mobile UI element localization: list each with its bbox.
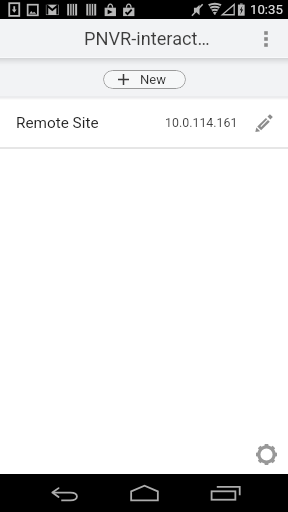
button[interactable]: More options: [244, 19, 288, 57]
staticText: 10.0.114.161: [165, 115, 238, 130]
button[interactable]: New: [103, 70, 186, 89]
button[interactable]: Edit: [254, 114, 274, 134]
button[interactable]: Recents: [199, 474, 252, 512]
button[interactable]: Settings: [251, 439, 281, 469]
staticText: New: [140, 72, 166, 87]
staticText: 10:35: [250, 2, 283, 17]
button[interactable]: Remote Site: [0, 100, 288, 147]
button[interactable]: Home: [118, 474, 170, 512]
staticText: PNVR-interact…: [84, 28, 210, 49]
button[interactable]: Back: [38, 474, 90, 512]
staticText: Remote Site: [16, 114, 99, 132]
